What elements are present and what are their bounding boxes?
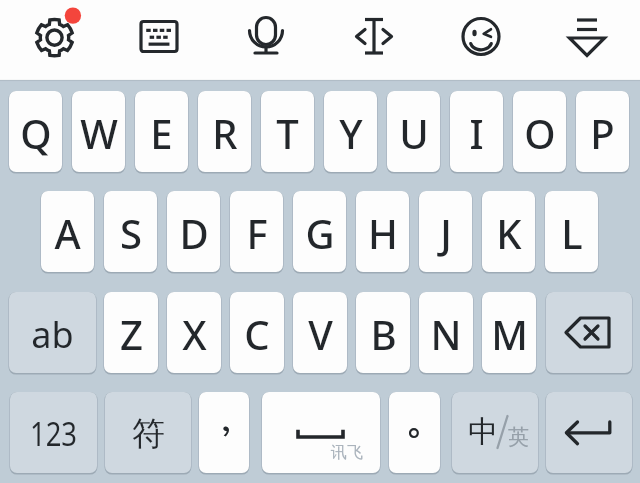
button[interactable]: V bbox=[293, 292, 347, 373]
staticText: O bbox=[524, 106, 556, 160]
staticText: A bbox=[54, 206, 81, 260]
staticText: E bbox=[150, 106, 173, 160]
button[interactable]: Y bbox=[324, 91, 377, 172]
staticText: Q bbox=[20, 106, 52, 160]
button[interactable]: Chinese English toggle bbox=[452, 392, 538, 473]
button[interactable]: Period bbox=[389, 392, 440, 473]
button[interactable]: Settings bbox=[12, 0, 96, 79]
button[interactable]: O bbox=[513, 91, 566, 172]
button[interactable]: W bbox=[72, 91, 125, 172]
button[interactable]: Keyboard layout bbox=[117, 0, 201, 79]
button[interactable]: R bbox=[198, 91, 251, 172]
button[interactable]: S bbox=[104, 191, 157, 272]
button[interactable]: 符 bbox=[105, 392, 191, 473]
staticText: W bbox=[80, 106, 118, 160]
staticText: H bbox=[368, 206, 398, 260]
button[interactable]: M bbox=[482, 292, 536, 373]
button[interactable]: K bbox=[482, 191, 535, 272]
staticText: N bbox=[430, 307, 462, 361]
staticText: C bbox=[244, 307, 270, 361]
staticText: I bbox=[469, 106, 484, 160]
staticText: G bbox=[305, 206, 335, 260]
staticText: R bbox=[212, 106, 238, 160]
button[interactable]: ab bbox=[9, 292, 96, 373]
button[interactable]: N bbox=[419, 292, 473, 373]
button[interactable]: E bbox=[135, 91, 188, 172]
button[interactable]: G bbox=[293, 191, 346, 272]
staticText: 123 bbox=[30, 411, 77, 456]
staticText: Z bbox=[120, 307, 143, 361]
button[interactable]: D bbox=[167, 191, 220, 272]
staticText: 讯飞 bbox=[331, 443, 363, 463]
button[interactable]: I bbox=[450, 91, 503, 172]
staticText: F bbox=[246, 206, 268, 260]
staticText: M bbox=[491, 307, 528, 361]
staticText: L bbox=[561, 206, 583, 260]
button[interactable]: Space bbox=[262, 392, 380, 473]
staticText: 英 bbox=[508, 424, 529, 450]
button[interactable]: Hide keyboard bbox=[545, 0, 629, 79]
button[interactable]: P bbox=[576, 91, 629, 172]
staticText: X bbox=[182, 307, 207, 361]
button[interactable]: Voice input bbox=[224, 0, 308, 79]
staticText: V bbox=[308, 307, 333, 361]
staticText: J bbox=[440, 206, 452, 260]
button[interactable]: L bbox=[545, 191, 598, 272]
button[interactable]: 123 bbox=[10, 392, 97, 473]
staticText: D bbox=[179, 206, 209, 260]
staticText: 符 bbox=[132, 413, 165, 455]
button[interactable]: U bbox=[387, 91, 440, 172]
staticText: Y bbox=[339, 106, 363, 160]
staticText: B bbox=[370, 307, 397, 361]
button[interactable]: Enter bbox=[546, 392, 632, 473]
button[interactable]: J bbox=[419, 191, 472, 272]
button[interactable]: Q bbox=[9, 91, 62, 172]
staticText: P bbox=[590, 106, 615, 160]
button[interactable]: Emoji bbox=[439, 0, 523, 79]
staticText: U bbox=[399, 106, 429, 160]
button[interactable]: C bbox=[230, 292, 284, 373]
staticText: S bbox=[120, 206, 142, 260]
button[interactable]: X bbox=[167, 292, 221, 373]
button[interactable]: T bbox=[261, 91, 314, 172]
staticText: ab bbox=[31, 310, 74, 359]
button[interactable]: Backspace bbox=[546, 292, 632, 373]
button[interactable]: H bbox=[356, 191, 409, 272]
staticText: T bbox=[276, 106, 299, 160]
button[interactable]: F bbox=[230, 191, 283, 272]
button[interactable]: A bbox=[41, 191, 94, 272]
button[interactable]: Comma bbox=[199, 392, 249, 473]
button[interactable]: Move cursor bbox=[332, 0, 416, 79]
staticText: 中 bbox=[468, 413, 498, 451]
button[interactable]: Z bbox=[104, 292, 158, 373]
button[interactable]: B bbox=[356, 292, 410, 373]
staticText: K bbox=[496, 206, 522, 260]
